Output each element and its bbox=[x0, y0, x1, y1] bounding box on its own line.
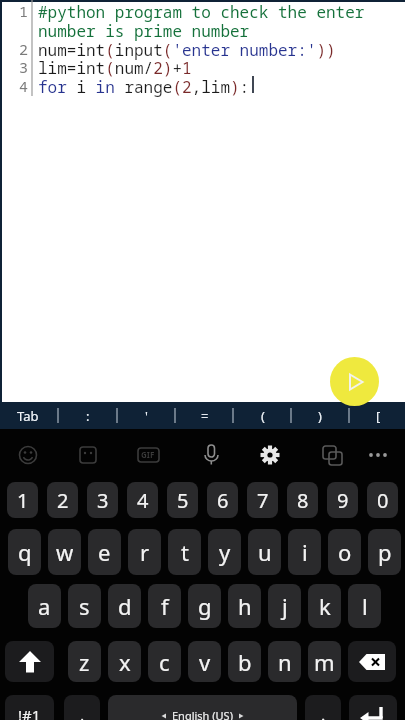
button[interactable]: . bbox=[305, 695, 341, 720]
staticText: u bbox=[258, 537, 272, 567]
staticText: English (US) bbox=[172, 708, 233, 720]
button[interactable]: : bbox=[68, 402, 108, 429]
button[interactable]: 4 bbox=[127, 482, 158, 518]
button[interactable]: ( bbox=[243, 402, 283, 429]
staticText: 4 bbox=[137, 487, 149, 514]
staticText: 2 bbox=[57, 487, 69, 514]
button[interactable]: i bbox=[288, 529, 321, 575]
button[interactable]: n bbox=[268, 641, 301, 682]
staticText: e bbox=[98, 537, 111, 567]
staticText: j bbox=[282, 591, 288, 621]
button[interactable]: o bbox=[328, 529, 361, 575]
button[interactable] bbox=[330, 357, 379, 406]
button[interactable]: 7 bbox=[247, 482, 278, 518]
staticText: v bbox=[199, 647, 211, 677]
staticText: [ bbox=[376, 407, 381, 425]
button[interactable]: u bbox=[248, 529, 281, 575]
staticText: b bbox=[238, 647, 252, 677]
button[interactable]: Tab bbox=[8, 402, 48, 429]
button[interactable]: l bbox=[348, 584, 381, 628]
button[interactable]: ' bbox=[126, 402, 166, 429]
button[interactable]: t bbox=[168, 529, 201, 575]
button[interactable]: j bbox=[268, 584, 301, 628]
button[interactable]: 9 bbox=[327, 482, 358, 518]
button[interactable]: [ bbox=[358, 402, 398, 429]
button[interactable]: r bbox=[128, 529, 161, 575]
button[interactable]: s bbox=[68, 584, 101, 628]
staticText: m bbox=[314, 647, 335, 677]
button[interactable]: d bbox=[108, 584, 141, 628]
staticText: 7 bbox=[257, 487, 269, 514]
button[interactable]: b bbox=[228, 641, 261, 682]
button[interactable]: x bbox=[108, 641, 141, 682]
staticText: w bbox=[56, 537, 74, 567]
button[interactable] bbox=[5, 641, 54, 682]
button[interactable]: English (US) bbox=[108, 695, 297, 720]
staticText: a bbox=[38, 591, 51, 621]
staticText: #python program to check the enter bbox=[38, 1, 365, 23]
staticText: ' bbox=[145, 407, 148, 425]
staticText: p bbox=[378, 537, 392, 567]
button[interactable]: m bbox=[308, 641, 341, 682]
button[interactable]: a bbox=[28, 584, 61, 628]
staticText: x bbox=[119, 647, 131, 677]
button[interactable]: 0 bbox=[367, 482, 398, 518]
staticText: !#1 bbox=[18, 705, 41, 720]
button[interactable]: !#1 bbox=[5, 695, 54, 720]
staticText: 1 bbox=[17, 487, 29, 514]
button[interactable]: f bbox=[148, 584, 181, 628]
staticText: r bbox=[140, 537, 150, 567]
button[interactable]: 1 bbox=[7, 482, 38, 518]
staticText: z bbox=[79, 647, 90, 677]
staticText: 3 bbox=[97, 487, 109, 514]
button[interactable]: q bbox=[8, 529, 41, 575]
button[interactable]: ) bbox=[300, 402, 340, 429]
staticText: c bbox=[159, 647, 170, 677]
button[interactable]: e bbox=[88, 529, 121, 575]
staticText: n bbox=[278, 647, 292, 677]
staticText: number is prime number bbox=[38, 20, 250, 42]
button[interactable]: g bbox=[188, 584, 221, 628]
staticText: y bbox=[219, 537, 231, 567]
button[interactable]: 5 bbox=[167, 482, 198, 518]
staticText: 4 bbox=[19, 76, 29, 96]
staticText: Tab bbox=[17, 407, 39, 425]
staticText: s bbox=[79, 591, 90, 621]
staticText: . bbox=[321, 704, 326, 720]
staticText: t bbox=[181, 537, 189, 567]
button[interactable]: v bbox=[188, 641, 221, 682]
staticText: h bbox=[238, 591, 252, 621]
button[interactable]: 8 bbox=[287, 482, 318, 518]
staticText: l bbox=[362, 591, 368, 621]
button[interactable]: k bbox=[308, 584, 341, 628]
button[interactable]: 2 bbox=[47, 482, 78, 518]
button[interactable] bbox=[349, 695, 397, 720]
button[interactable]: c bbox=[148, 641, 181, 682]
staticText: 1 bbox=[19, 1, 29, 21]
button[interactable]: y bbox=[208, 529, 241, 575]
staticText: 9 bbox=[337, 487, 349, 514]
staticText: f bbox=[161, 591, 169, 621]
staticText: q bbox=[18, 537, 32, 567]
staticText: d bbox=[118, 591, 132, 621]
staticText: 0 bbox=[377, 487, 389, 514]
staticText: i bbox=[302, 537, 308, 567]
button[interactable]: , bbox=[64, 695, 100, 720]
button[interactable] bbox=[348, 641, 396, 682]
staticText: : bbox=[86, 407, 90, 425]
button[interactable]: p bbox=[368, 529, 401, 575]
button[interactable]: 3 bbox=[87, 482, 118, 518]
staticText: o bbox=[338, 537, 352, 567]
staticText: , bbox=[80, 704, 85, 720]
staticText: = bbox=[201, 407, 209, 425]
button[interactable]: z bbox=[68, 641, 101, 682]
staticText: GIF bbox=[141, 449, 155, 460]
button[interactable]: 6 bbox=[207, 482, 238, 518]
button[interactable]: h bbox=[228, 584, 261, 628]
staticText: for i in range(2,lim): bbox=[38, 76, 250, 98]
staticText: num=int(input('enter number:')) bbox=[38, 39, 336, 61]
button[interactable]: = bbox=[185, 402, 225, 429]
button[interactable]: w bbox=[48, 529, 81, 575]
staticText: 6 bbox=[217, 487, 229, 514]
staticText: k bbox=[319, 591, 331, 621]
